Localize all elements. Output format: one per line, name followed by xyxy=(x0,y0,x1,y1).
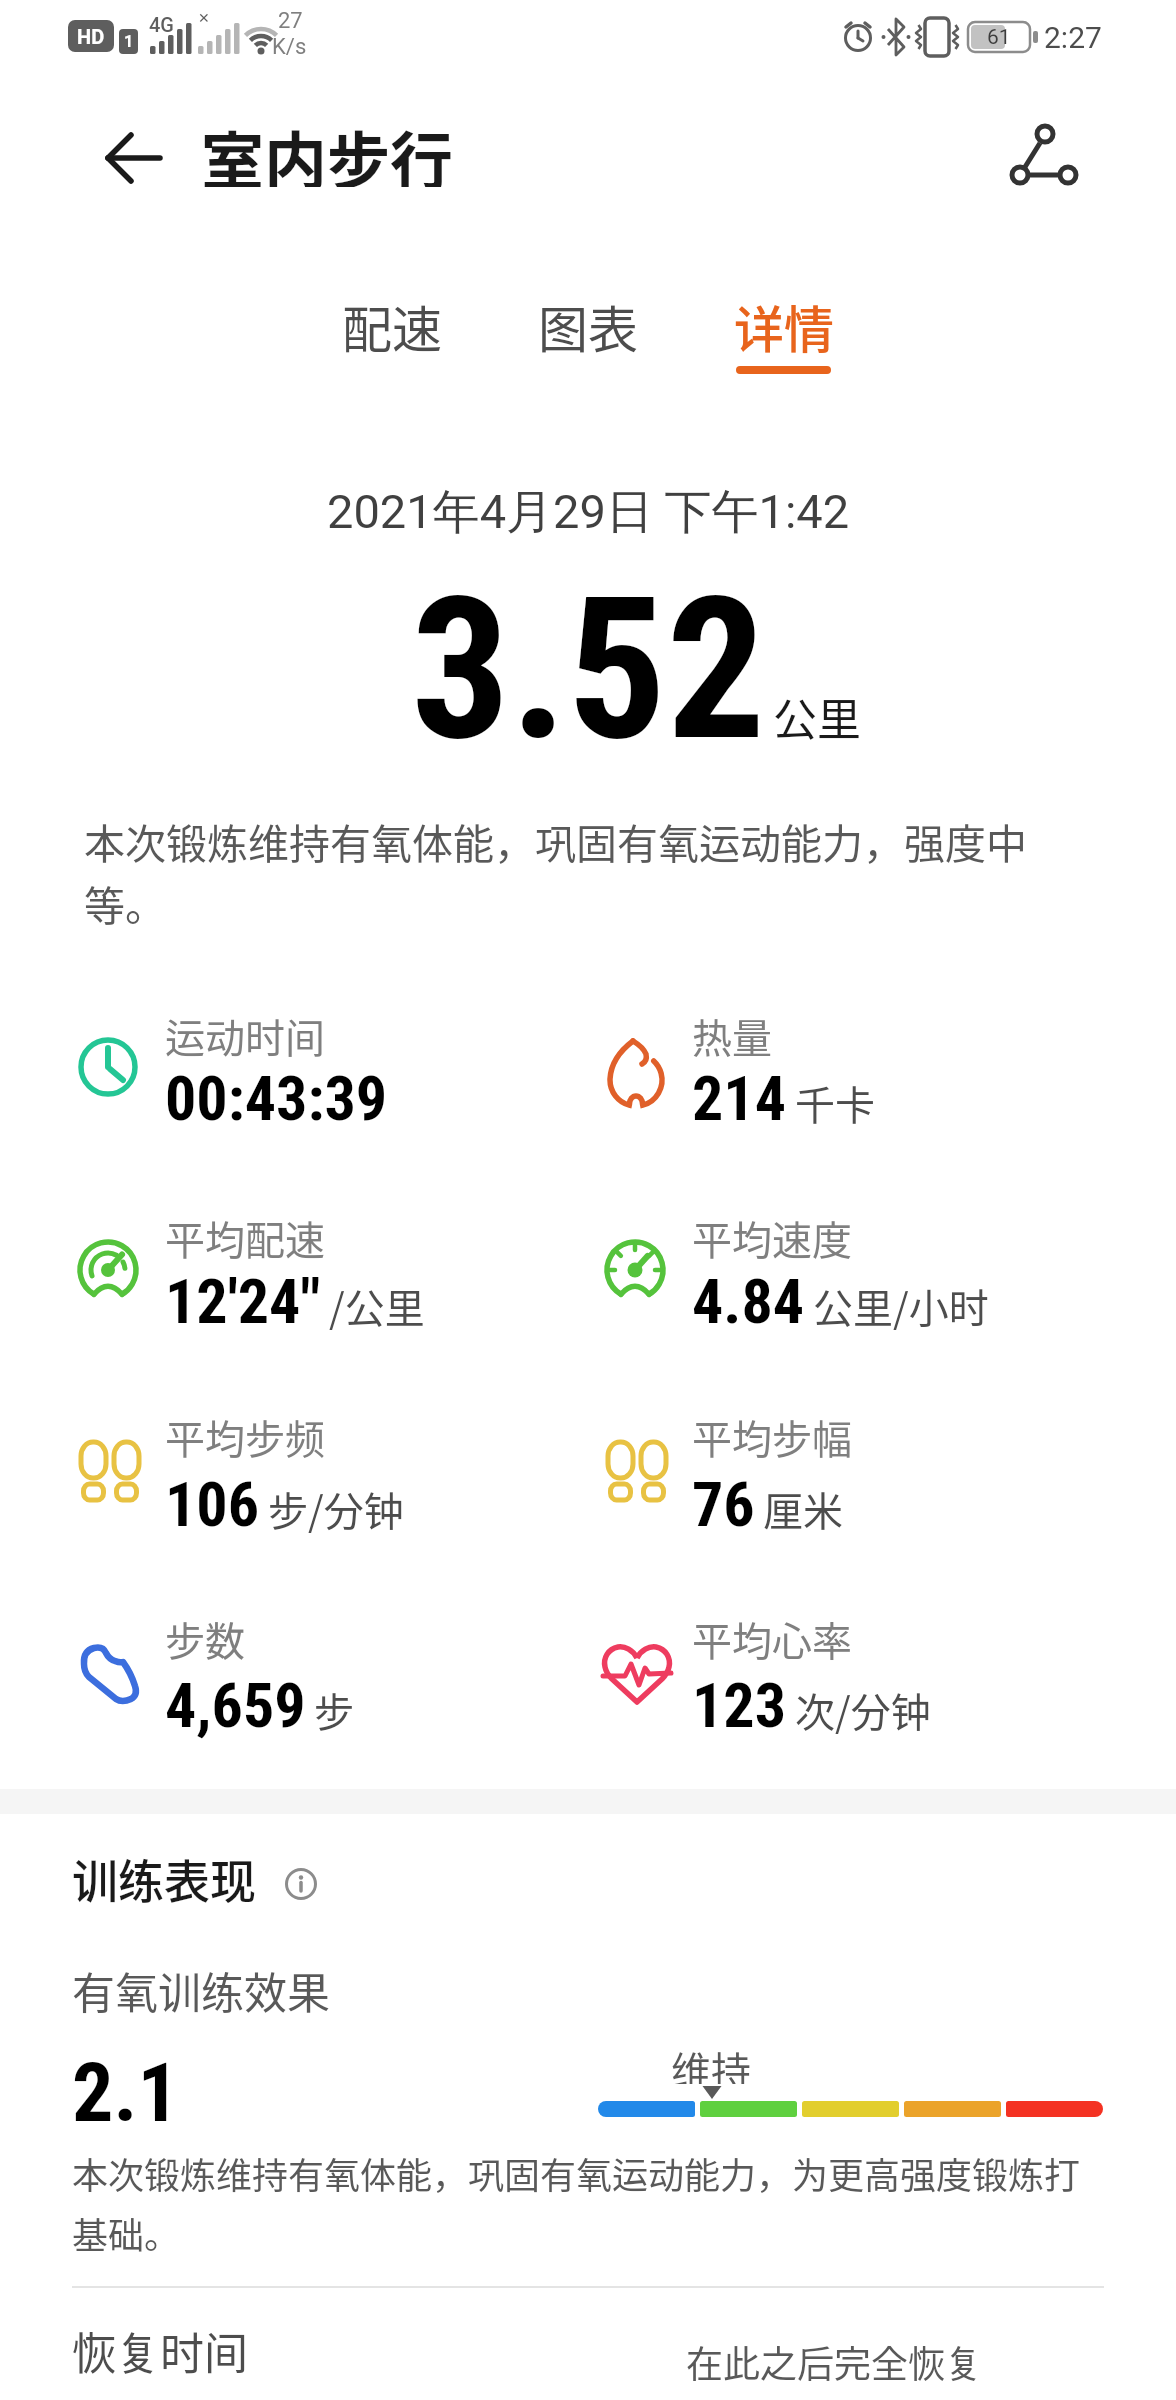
staticText: 平均心率 xyxy=(692,1610,852,1668)
staticText: 12'24" xyxy=(165,1265,321,1338)
staticText: 214 xyxy=(692,1062,787,1135)
staticText: 训练表现 xyxy=(72,1845,256,1909)
staticText: 2021年4月29日 下午1:42 xyxy=(327,483,850,542)
button[interactable] xyxy=(995,110,1095,210)
staticText: 4.84 xyxy=(692,1265,805,1338)
staticText: 公里 xyxy=(773,685,861,741)
staticText: 4G xyxy=(149,13,174,36)
staticText: 步数 xyxy=(165,1610,245,1668)
staticText: HD xyxy=(77,25,105,48)
staticText: 步 xyxy=(314,1681,354,1739)
staticText: 厘米 xyxy=(763,1480,843,1538)
staticText: 27 xyxy=(278,8,303,34)
staticText: 有氧训练效果 xyxy=(72,1959,330,2019)
staticText: 平均配速 xyxy=(165,1209,325,1267)
staticText: 3.52 xyxy=(411,555,766,785)
staticText: 热量 xyxy=(692,1007,772,1065)
staticText: 1 xyxy=(124,32,134,51)
button[interactable]: 详情 xyxy=(686,290,882,362)
staticText: 公里/小时 xyxy=(813,1277,989,1335)
staticText: 次/分钟 xyxy=(795,1681,931,1739)
staticText: 维持 xyxy=(671,2040,751,2084)
staticText: 本次锻炼维持有氧体能，巩固有氧运动能力，为更高强度锻炼打基础。 xyxy=(72,2147,1092,2259)
button[interactable] xyxy=(278,1861,324,1907)
staticText: 配速 xyxy=(342,290,442,362)
staticText: 步/分钟 xyxy=(268,1480,404,1538)
button[interactable]: 图表 xyxy=(490,290,686,362)
staticText: 室内步行 xyxy=(201,111,453,187)
staticText: 千卡 xyxy=(795,1074,875,1132)
staticText: 运动时间 xyxy=(165,1007,325,1065)
staticText: 2:27 xyxy=(1044,20,1102,54)
staticText: 平均速度 xyxy=(692,1209,852,1267)
staticText: 61 xyxy=(987,25,1011,50)
staticText: 本次锻炼维持有氧体能，巩固有氧运动能力，强度中等。 xyxy=(84,811,1054,932)
staticText: K/s xyxy=(272,34,307,60)
button[interactable]: 恢复时间 xyxy=(0,2300,1176,2400)
staticText: 76 xyxy=(692,1468,755,1541)
staticText: 恢复时间 xyxy=(72,2319,248,2379)
staticText: 详情 xyxy=(734,290,834,362)
staticText: 00:43:39 xyxy=(165,1062,388,1135)
staticText: 123 xyxy=(692,1669,787,1742)
staticText: 图表 xyxy=(538,290,638,362)
staticText: 4,659 xyxy=(165,1669,306,1742)
staticText: 2.1 xyxy=(72,2045,179,2141)
staticText: 平均步频 xyxy=(165,1408,325,1466)
staticText: 106 xyxy=(165,1468,260,1541)
staticText: ✕ xyxy=(198,10,210,26)
button[interactable]: 配速 xyxy=(294,290,490,362)
button[interactable] xyxy=(88,114,176,202)
staticText: 平均步幅 xyxy=(692,1408,852,1466)
staticText: /公里 xyxy=(329,1277,425,1335)
staticText: 在此之后完全恢复 xyxy=(686,2335,982,2389)
